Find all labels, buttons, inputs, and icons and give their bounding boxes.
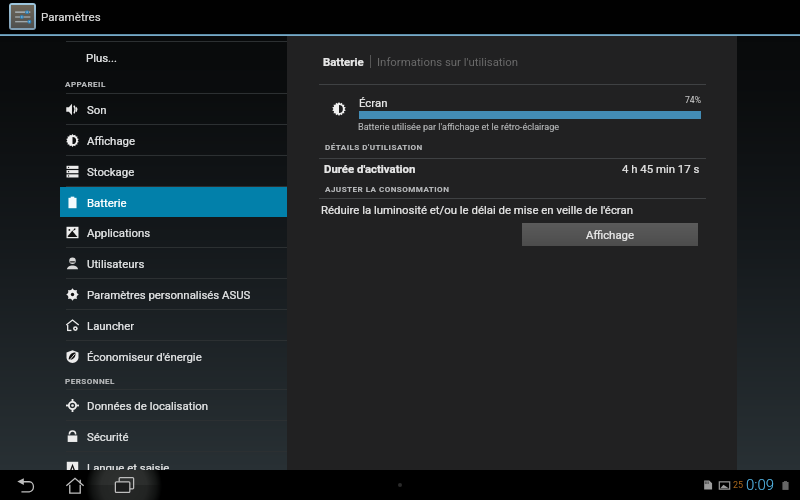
staticText: Batterie utilisée par l'affichage et le … bbox=[358, 122, 560, 133]
staticText: 74% bbox=[685, 95, 701, 105]
button[interactable]: Sécurité bbox=[0, 421, 287, 451]
staticText: Stockage bbox=[87, 165, 135, 178]
staticText: PERSONNEL bbox=[65, 376, 115, 385]
button[interactable]: Back bbox=[4, 470, 46, 500]
button[interactable]: Home bbox=[54, 470, 96, 500]
button[interactable]: Applications bbox=[0, 217, 287, 247]
staticText: Affichage bbox=[586, 228, 635, 241]
staticText: Écran bbox=[359, 96, 388, 109]
button[interactable]: Batterie bbox=[60, 187, 287, 217]
staticText: 0:09 bbox=[746, 476, 775, 494]
staticText: Son bbox=[87, 103, 107, 116]
staticText: 25 bbox=[733, 480, 744, 491]
button[interactable]: Affichage bbox=[0, 125, 287, 155]
button[interactable]: Son bbox=[0, 94, 287, 124]
button[interactable]: Données de localisation bbox=[0, 390, 287, 420]
staticText: 4 h 45 min 17 s bbox=[622, 162, 700, 175]
button[interactable]: Économiseur d'énergie bbox=[0, 341, 287, 371]
staticText: Utilisateurs bbox=[87, 257, 145, 270]
button[interactable]: Launcher bbox=[0, 310, 287, 340]
staticText: DÉTAILS D'UTILISATION bbox=[325, 142, 423, 151]
button[interactable]: Recent apps bbox=[103, 470, 145, 500]
staticText: Informations sur l'utilisation bbox=[377, 55, 519, 68]
staticText: AJUSTER LA CONSOMMATION bbox=[325, 184, 450, 193]
button[interactable]: Paramètres personnalisés ASUS bbox=[0, 279, 287, 309]
staticText: Réduire la luminosité et/ou le délai de … bbox=[321, 203, 633, 216]
button[interactable]: Affichage bbox=[522, 223, 698, 246]
staticText: Paramètres personnalisés ASUS bbox=[87, 288, 251, 301]
staticText: Batterie bbox=[87, 196, 127, 209]
button[interactable]: Plus... bbox=[0, 42, 287, 73]
staticText: Économiseur d'énergie bbox=[87, 350, 202, 363]
staticText: Sécurité bbox=[87, 430, 129, 443]
staticText: Plus... bbox=[86, 51, 118, 64]
staticText: Langue et saisie bbox=[87, 461, 170, 474]
button[interactable]: Stockage bbox=[0, 156, 287, 186]
staticText: Applications bbox=[87, 226, 151, 239]
staticText: Affichage bbox=[87, 134, 136, 147]
staticText: Launcher bbox=[87, 319, 135, 332]
button[interactable]: Langue et saisie bbox=[0, 452, 287, 482]
staticText: Paramètres bbox=[41, 10, 101, 24]
button[interactable]: Utilisateurs bbox=[0, 248, 287, 278]
staticText: Batterie bbox=[323, 55, 364, 68]
staticText: APPAREIL bbox=[65, 79, 106, 88]
staticText: Données de localisation bbox=[87, 399, 208, 412]
button[interactable]: Settings bbox=[9, 3, 36, 30]
staticText: Durée d'activation bbox=[324, 162, 416, 175]
